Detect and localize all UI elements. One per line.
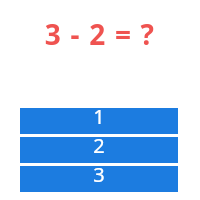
staticText: 3 - 2 = ?	[0, 15, 200, 53]
button[interactable]: 1	[20, 108, 178, 134]
staticText: 2	[93, 132, 105, 158]
button[interactable]: 2	[20, 137, 178, 163]
staticText: 1	[93, 103, 105, 129]
staticText: 3	[93, 161, 105, 187]
button[interactable]: 3	[20, 166, 178, 192]
